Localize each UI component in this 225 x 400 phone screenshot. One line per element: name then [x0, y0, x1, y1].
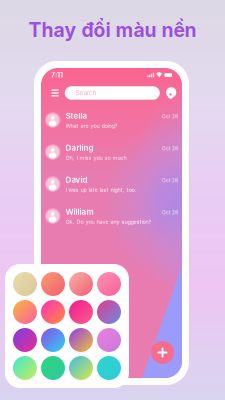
staticText: Oct 28 — [162, 113, 178, 119]
staticText: Oh, I miss you so much — [65, 154, 126, 161]
button[interactable]: Color swatch — [41, 328, 65, 352]
button[interactable]: Color swatch — [97, 272, 121, 296]
button[interactable]: Color swatch — [69, 300, 93, 324]
button[interactable]: Color swatch — [97, 328, 121, 352]
staticText: 7:11 — [51, 71, 63, 79]
button[interactable]: Color swatch — [69, 356, 93, 380]
button[interactable]: Color swatch — [69, 272, 93, 296]
button[interactable]: Color swatch — [41, 272, 65, 296]
button[interactable]: New message — [151, 341, 174, 364]
button[interactable]: Color swatch — [13, 300, 37, 324]
button[interactable]: Color swatch — [69, 328, 93, 352]
staticText: Stella — [65, 111, 87, 121]
button[interactable]: Darling — [41, 136, 182, 168]
staticText: I was up late last night, too. — [65, 186, 136, 193]
staticText: Search — [76, 89, 97, 97]
button[interactable]: Color swatch — [41, 356, 65, 380]
button[interactable]: David — [41, 168, 182, 200]
button[interactable]: Color swatch — [13, 272, 37, 296]
staticText: Darling — [65, 143, 93, 153]
staticText: Oct 28 — [162, 209, 178, 215]
staticText: William — [65, 207, 93, 217]
button[interactable]: Color swatch — [97, 300, 121, 324]
button[interactable]: William — [41, 200, 182, 232]
button[interactable]: Change theme — [165, 87, 177, 99]
staticText: Oct 28 — [162, 177, 178, 183]
staticText: Thay đổi màu nền — [28, 18, 196, 42]
button[interactable]: Stella — [41, 104, 182, 136]
button[interactable]: Menu — [51, 86, 60, 99]
staticText: Oct 28 — [162, 145, 178, 151]
staticText: Ok. Do you have any suggestion? — [65, 218, 151, 225]
staticText: What are you doing? — [65, 122, 117, 129]
button[interactable]: Color swatch — [97, 356, 121, 380]
button[interactable]: Color swatch — [13, 328, 37, 352]
staticText: David — [65, 175, 87, 185]
button[interactable]: Color swatch — [41, 300, 65, 324]
button[interactable]: Search — [65, 86, 160, 100]
button[interactable]: Color swatch — [13, 356, 37, 380]
